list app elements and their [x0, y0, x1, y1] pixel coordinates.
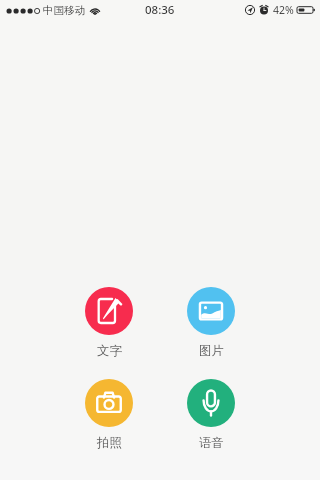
staticText: 图片: [199, 343, 224, 359]
staticText: 拍照: [97, 435, 122, 451]
staticText: 42%: [273, 3, 294, 17]
button[interactable]: 拍照: [68, 379, 150, 451]
staticText: 语音: [199, 435, 224, 451]
button[interactable]: 语音: [170, 379, 252, 451]
button[interactable]: 图片: [170, 287, 252, 359]
staticText: 中国移动: [43, 4, 85, 17]
staticText: 08:36: [145, 2, 175, 18]
button[interactable]: 文字: [68, 287, 150, 359]
staticText: 文字: [97, 343, 122, 359]
